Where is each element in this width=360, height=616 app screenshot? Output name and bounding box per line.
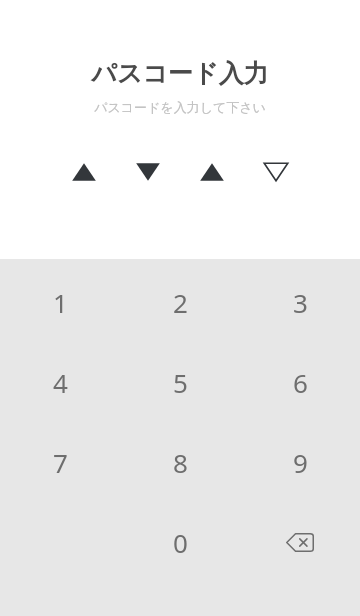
staticText: 3 [293, 285, 308, 320]
staticText: 9 [293, 445, 308, 480]
button[interactable]: 0 [120, 522, 240, 562]
button[interactable]: 2 [120, 282, 240, 322]
staticText: 0 [173, 525, 188, 560]
button[interactable]: 5 [120, 362, 240, 402]
button[interactable]: 8 [120, 442, 240, 482]
button[interactable]: 6 [240, 362, 360, 402]
staticText: 7 [53, 445, 68, 480]
button[interactable]: Backspace [240, 522, 360, 562]
staticText: 1 [53, 285, 68, 320]
staticText: パスコードを入力して下さい [94, 99, 266, 115]
staticText: 6 [293, 365, 308, 400]
button[interactable]: 4 [0, 362, 120, 402]
button[interactable]: 9 [240, 442, 360, 482]
staticText: パスコード入力 [91, 58, 269, 89]
button[interactable]: 3 [240, 282, 360, 322]
staticText: 4 [53, 365, 68, 400]
staticText: 5 [173, 365, 188, 400]
staticText: 8 [173, 445, 188, 480]
staticText: 2 [173, 285, 188, 320]
button[interactable]: 7 [0, 442, 120, 482]
button[interactable]: 1 [0, 282, 120, 322]
